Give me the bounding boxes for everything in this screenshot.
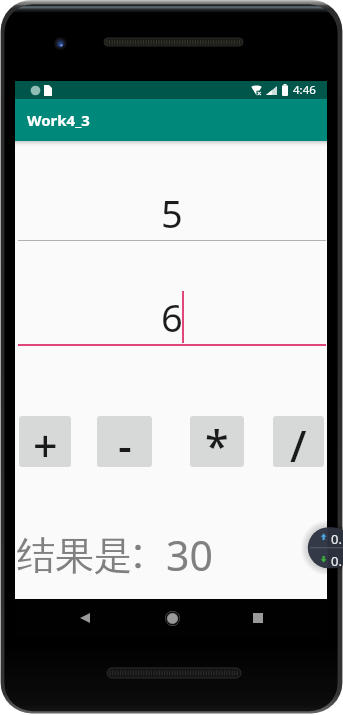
button[interactable]: Work4_3	[15, 99, 327, 141]
button[interactable]: 5	[161, 187, 183, 239]
button[interactable]: Back	[64, 599, 106, 637]
button[interactable]: Recents	[237, 599, 279, 637]
button[interactable]: /	[273, 416, 324, 467]
staticText: 30	[166, 527, 213, 583]
staticText: /	[290, 416, 307, 467]
staticText: 结果是	[17, 532, 133, 581]
button[interactable]: *	[190, 416, 244, 467]
staticText: 0.	[331, 530, 342, 548]
staticText: 4:46	[293, 82, 316, 98]
staticText: +	[33, 416, 58, 467]
button[interactable]: -	[97, 416, 152, 467]
staticText: *	[205, 416, 229, 467]
staticText: 0.	[331, 552, 342, 570]
button[interactable]: 6	[161, 291, 183, 343]
button[interactable]: +	[19, 416, 71, 467]
button[interactable]: Home	[151, 599, 193, 637]
staticText: -	[118, 416, 132, 467]
staticText: Work4_3	[27, 110, 90, 130]
